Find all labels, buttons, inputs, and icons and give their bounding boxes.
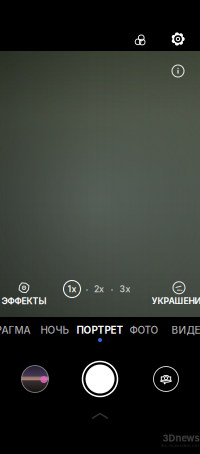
button[interactable]: Show more controls — [85, 406, 115, 425]
button[interactable]: Gallery — [18, 362, 52, 396]
button[interactable]: НОЧЬ — [40, 324, 69, 336]
button[interactable]: Colour filters — [127, 27, 153, 53]
button[interactable]: Info — [165, 58, 191, 84]
staticText: 3x — [119, 284, 130, 294]
staticText: ФОТО — [129, 324, 158, 336]
staticText: ПОРТРЕТ — [76, 324, 123, 336]
staticText: Всё, что вы хотели знать — [160, 444, 200, 448]
button[interactable]: УКРАШЕНИЕ — [151, 282, 200, 306]
button[interactable]: ВИДЕО — [171, 324, 200, 336]
staticText: РАГМА — [0, 324, 30, 336]
staticText: 1x — [67, 284, 76, 294]
staticText: 2x — [94, 284, 104, 294]
button[interactable]: РАГМА — [0, 324, 30, 336]
staticText: 3Dnews — [162, 432, 199, 444]
button[interactable]: 3x — [114, 278, 135, 299]
staticText: УКРАШЕНИЕ — [151, 296, 200, 306]
button[interactable]: Take photo — [80, 359, 120, 399]
staticText: НОЧЬ — [40, 324, 69, 336]
button[interactable]: Switch camera — [150, 363, 182, 395]
button[interactable]: ЭФФЕКТЫ — [1, 282, 46, 306]
staticText: ЭФФЕКТЫ — [1, 296, 46, 306]
button[interactable]: ФОТО — [129, 324, 158, 336]
button[interactable]: ПОРТРЕТ — [76, 324, 123, 336]
staticText: ВИДЕО — [171, 324, 200, 336]
button[interactable]: 2x — [88, 278, 109, 299]
button[interactable]: Settings — [165, 26, 191, 52]
button[interactable]: 1x — [61, 278, 82, 299]
